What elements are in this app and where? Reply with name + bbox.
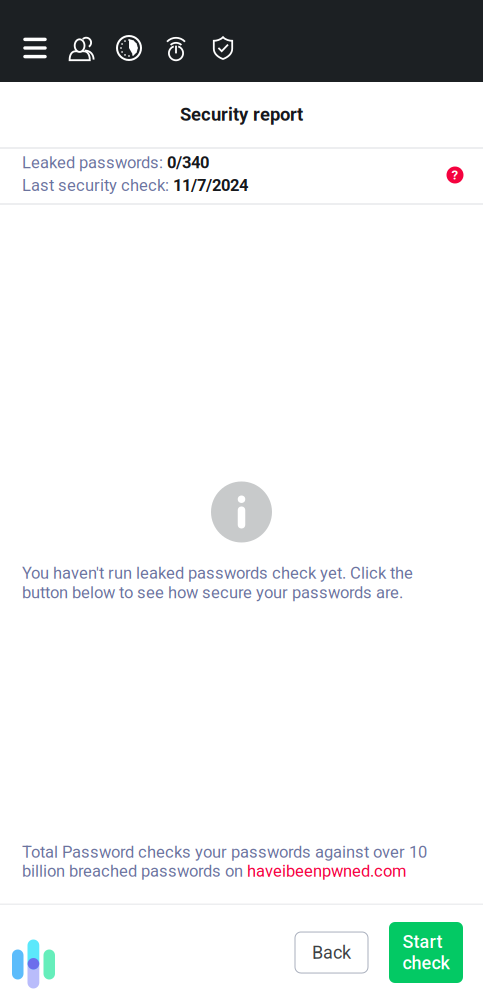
staticText: Last security check: 11/7/2024 xyxy=(22,176,248,195)
staticText: You haven't run leaked passwords check y… xyxy=(22,563,413,602)
staticText: Security report xyxy=(180,104,303,125)
staticText: Start check xyxy=(402,931,449,974)
button[interactable]: Back xyxy=(295,932,368,973)
staticText: Total Password checks your passwords aga… xyxy=(22,843,427,880)
button[interactable]: Security xyxy=(199,14,246,82)
button[interactable]: Menu xyxy=(11,14,58,82)
button[interactable]: Remote access xyxy=(152,14,199,82)
button[interactable]: Start check xyxy=(389,922,463,983)
button[interactable]: Accounts xyxy=(58,14,105,82)
staticText: Leaked passwords: 0/340 xyxy=(22,153,209,172)
staticText: Back xyxy=(312,942,351,963)
button[interactable]: Help xyxy=(437,157,473,195)
button[interactable]: Dashboard xyxy=(105,14,152,82)
staticText: ? xyxy=(451,167,458,183)
